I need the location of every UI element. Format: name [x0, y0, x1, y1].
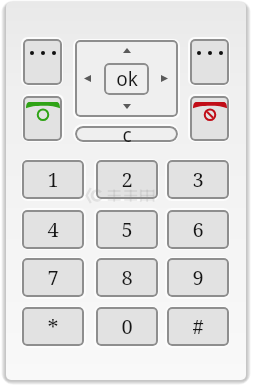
staticText: 4 [47, 216, 59, 243]
staticText: 0 [121, 313, 133, 340]
staticText: c [122, 122, 132, 146]
button[interactable]: Down [119, 100, 135, 113]
staticText: ok [116, 66, 138, 92]
button[interactable]: Options [190, 39, 229, 85]
staticText: 7 [47, 264, 59, 291]
button[interactable]: Left [80, 71, 95, 86]
staticText: 5 [121, 216, 133, 243]
staticText: 2 [121, 166, 133, 193]
button[interactable]: Clear [75, 126, 178, 142]
button[interactable]: 2 [96, 160, 158, 199]
button[interactable]: 3 [167, 160, 229, 199]
button[interactable]: 5 [96, 210, 158, 249]
button[interactable]: Hang up [190, 96, 229, 141]
button[interactable]: # [167, 307, 229, 346]
staticText: * [47, 312, 59, 342]
button[interactable]: 8 [96, 258, 158, 297]
button[interactable]: Up [119, 44, 135, 57]
button[interactable]: Call [23, 96, 62, 141]
staticText: 8 [121, 264, 133, 291]
button[interactable]: OK [104, 63, 149, 95]
button[interactable]: Right [157, 71, 172, 86]
staticText: # [192, 313, 204, 340]
button[interactable]: 7 [22, 258, 84, 297]
button[interactable]: 1 [22, 160, 84, 199]
button[interactable]: 4 [22, 210, 84, 249]
button[interactable]: Menu [23, 39, 62, 85]
button[interactable]: * [22, 307, 84, 346]
staticText: 9 [192, 264, 204, 291]
button[interactable]: 9 [167, 258, 229, 297]
staticText: 3 [192, 166, 204, 193]
staticText: 1 [47, 166, 59, 193]
staticText: 6 [192, 216, 204, 243]
button[interactable]: 6 [167, 210, 229, 249]
button[interactable]: 0 [96, 307, 158, 346]
